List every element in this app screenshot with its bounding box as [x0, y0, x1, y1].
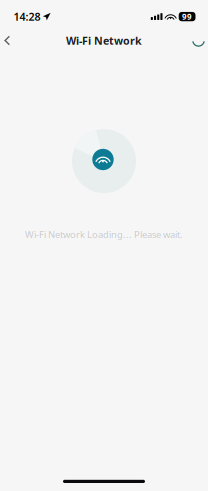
staticText: Wi-Fi Network Loading... Please wait.	[25, 228, 183, 240]
staticText: 99	[182, 11, 192, 22]
button[interactable]: Back	[0, 29, 14, 51]
staticText: Wi-Fi Network	[66, 33, 142, 48]
staticText: 14:28	[13, 9, 40, 24]
button[interactable]: Loading	[189, 29, 208, 51]
